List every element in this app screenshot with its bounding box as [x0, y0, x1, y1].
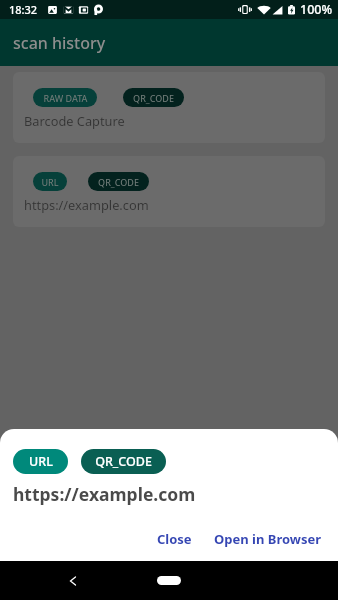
staticText: URL [41, 176, 59, 188]
button[interactable]: Close [153, 525, 196, 553]
other: Home [157, 576, 181, 585]
button[interactable]: URL [13, 449, 68, 474]
other: Back [68, 576, 78, 586]
button[interactable]: Open in Browser [210, 525, 326, 553]
staticText: 100% [300, 1, 333, 18]
staticText: Open in Browser [214, 530, 322, 548]
button[interactable]: RAW DATA [33, 88, 97, 107]
button[interactable]: URL [33, 172, 67, 191]
staticText: Close [157, 530, 192, 548]
staticText: URL [29, 453, 53, 470]
button[interactable]: URL [13, 156, 325, 227]
button[interactable]: QR_CODE [88, 172, 149, 191]
button[interactable]: QR_CODE [123, 88, 184, 107]
staticText: QR_CODE [95, 453, 152, 470]
staticText: Barcode Capture [24, 112, 125, 129]
button[interactable]: QR_CODE [81, 449, 166, 474]
staticText: 18:32 [9, 2, 38, 17]
staticText: QR_CODE [133, 92, 174, 104]
staticText: RAW DATA [43, 92, 88, 104]
staticText: https://example.com [24, 196, 149, 213]
staticText: scan history [13, 32, 106, 54]
staticText: QR_CODE [98, 176, 139, 188]
button[interactable]: RAW DATA [13, 72, 325, 143]
staticText: https://example.com [13, 482, 196, 506]
